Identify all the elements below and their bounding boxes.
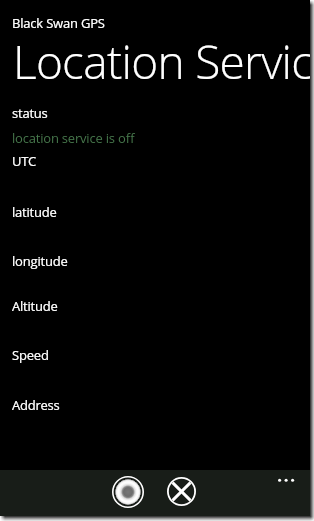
button[interactable]: Altitude <box>0 293 310 315</box>
staticText: Speed <box>12 346 49 364</box>
button[interactable]: longitude <box>0 248 310 270</box>
button[interactable]: Record location <box>112 476 144 508</box>
staticText: Black Swan GPS <box>12 14 105 32</box>
button[interactable]: latitude <box>0 199 310 221</box>
staticText: Location Services <box>13 30 310 93</box>
staticText: Altitude <box>12 297 58 315</box>
staticText: Address <box>12 396 60 414</box>
button[interactable]: location service is off <box>0 125 310 147</box>
button[interactable]: Speed <box>0 342 310 364</box>
button[interactable]: More options <box>268 470 304 490</box>
button[interactable]: UTC <box>0 148 310 170</box>
button[interactable]: Cancel <box>167 477 196 506</box>
staticText: location service is off <box>12 129 135 147</box>
button[interactable]: status <box>0 100 310 122</box>
staticText: latitude <box>12 203 57 221</box>
button[interactable]: Address <box>0 392 310 414</box>
staticText: longitude <box>12 252 68 270</box>
staticText: UTC <box>12 152 36 170</box>
staticText: status <box>12 104 48 122</box>
